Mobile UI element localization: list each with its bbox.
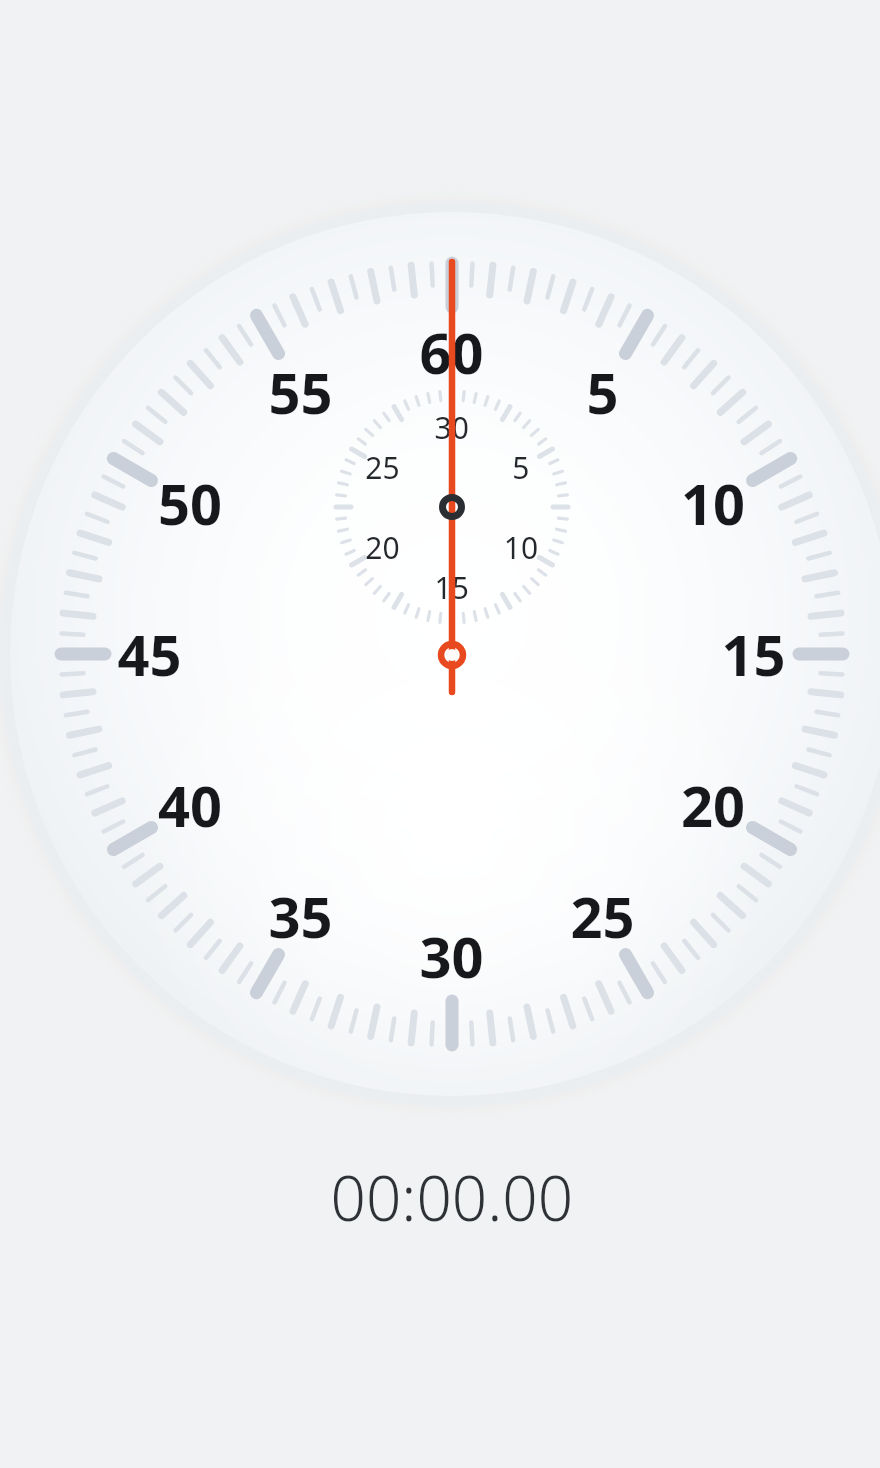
button[interactable]: Stopwatch (0, 0, 880, 1468)
